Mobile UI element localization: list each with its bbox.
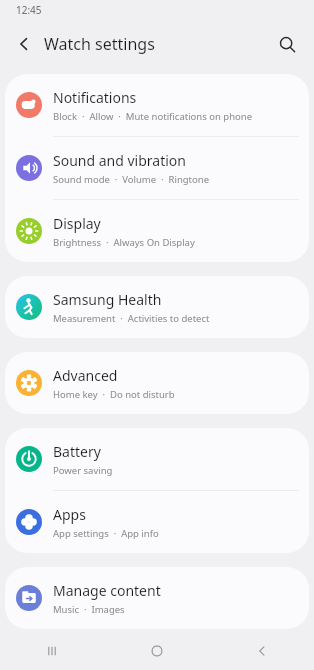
staticText: Notifications: [53, 88, 137, 107]
button[interactable]: Samsung Health: [5, 276, 309, 338]
staticText: Music · Images: [53, 603, 125, 616]
staticText: Battery: [53, 442, 101, 461]
staticText: Sound and vibration: [53, 151, 186, 170]
button[interactable]: Display: [5, 200, 309, 262]
button[interactable]: Manage content: [5, 567, 309, 629]
button[interactable]: Recents: [0, 632, 104, 670]
staticText: Power saving: [53, 464, 113, 477]
staticText: Samsung Health: [53, 290, 162, 309]
button[interactable]: Home: [104, 632, 209, 670]
button[interactable]: Sound and vibration: [5, 137, 309, 199]
staticText: Brightness · Always On Display: [53, 236, 195, 249]
button[interactable]: Back: [6, 26, 42, 62]
staticText: Apps: [53, 505, 86, 524]
button[interactable]: Back: [209, 632, 314, 670]
staticText: Manage content: [53, 581, 161, 600]
staticText: Home key · Do not disturb: [53, 388, 175, 401]
staticText: Block · Allow · Mute notifications on ph…: [53, 110, 253, 123]
staticText: 12:45: [16, 3, 42, 17]
staticText: Watch settings: [44, 33, 155, 55]
staticText: Measurement · Activities to detect: [53, 312, 210, 325]
button[interactable]: Search: [268, 25, 306, 63]
button[interactable]: Advanced: [5, 352, 309, 414]
button[interactable]: Apps: [5, 491, 309, 553]
button[interactable]: Notifications: [5, 74, 309, 136]
staticText: Advanced: [53, 366, 118, 385]
staticText: Sound mode · Volume · Ringtone: [53, 173, 209, 186]
staticText: Display: [53, 214, 101, 233]
staticText: App settings · App info: [53, 527, 159, 540]
button[interactable]: Battery: [5, 428, 309, 490]
